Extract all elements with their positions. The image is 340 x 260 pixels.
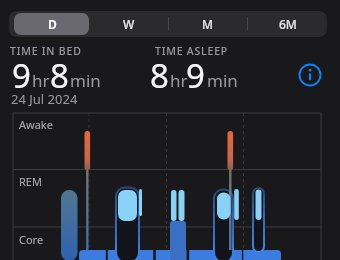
button[interactable] <box>14 13 89 35</box>
button[interactable]: M <box>188 11 228 37</box>
staticText: hr <box>32 69 50 92</box>
staticText: min <box>70 69 101 92</box>
button[interactable]: 6M <box>268 11 308 37</box>
staticText: W <box>123 16 135 32</box>
staticText: Core <box>19 232 44 247</box>
staticText: min <box>207 69 238 92</box>
staticText: 8 <box>50 53 69 98</box>
staticText: hr <box>170 69 188 92</box>
staticText: 9 <box>186 53 205 98</box>
staticText: Awake <box>19 117 53 132</box>
staticText: 6M <box>279 16 297 32</box>
button[interactable]: W <box>109 11 149 37</box>
staticText: M <box>202 16 214 32</box>
staticText: 9 <box>12 53 31 98</box>
staticText: 8 <box>150 53 169 98</box>
staticText: D <box>48 16 57 32</box>
staticText: TIME IN BED <box>10 44 82 58</box>
staticText: TIME ASLEEP <box>155 44 228 58</box>
button[interactable]: D <box>32 11 72 37</box>
button[interactable] <box>297 62 323 88</box>
staticText: 24 Jul 2024 <box>11 90 78 108</box>
staticText: REM <box>19 174 42 189</box>
